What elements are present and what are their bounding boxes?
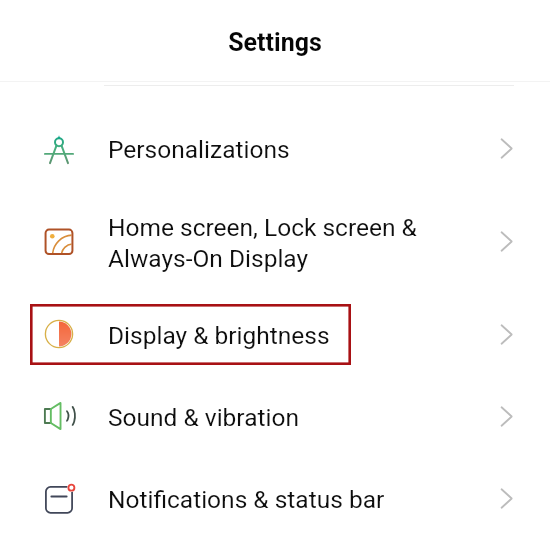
- other: Open: [500, 488, 513, 509]
- other: Open: [500, 138, 513, 159]
- staticText: Notifications & status bar: [108, 485, 500, 514]
- staticText: Settings: [228, 28, 322, 57]
- button[interactable]: Notifications & status bar: [0, 457, 550, 539]
- staticText: Display & brightness: [108, 321, 500, 350]
- button[interactable]: Display & brightness: [0, 293, 550, 375]
- other: Open: [500, 231, 513, 252]
- button[interactable]: Home screen, Lock screen & Always-On Dis…: [0, 190, 550, 293]
- button[interactable]: Personalizations: [0, 107, 550, 190]
- staticText: Sound & vibration: [108, 403, 500, 432]
- staticText: Personalizations: [108, 135, 500, 164]
- button[interactable]: Sound & vibration: [0, 375, 550, 457]
- other: Open: [500, 324, 513, 345]
- other: Open: [500, 406, 513, 427]
- staticText: Home screen, Lock screen & Always-On Dis…: [108, 213, 500, 273]
